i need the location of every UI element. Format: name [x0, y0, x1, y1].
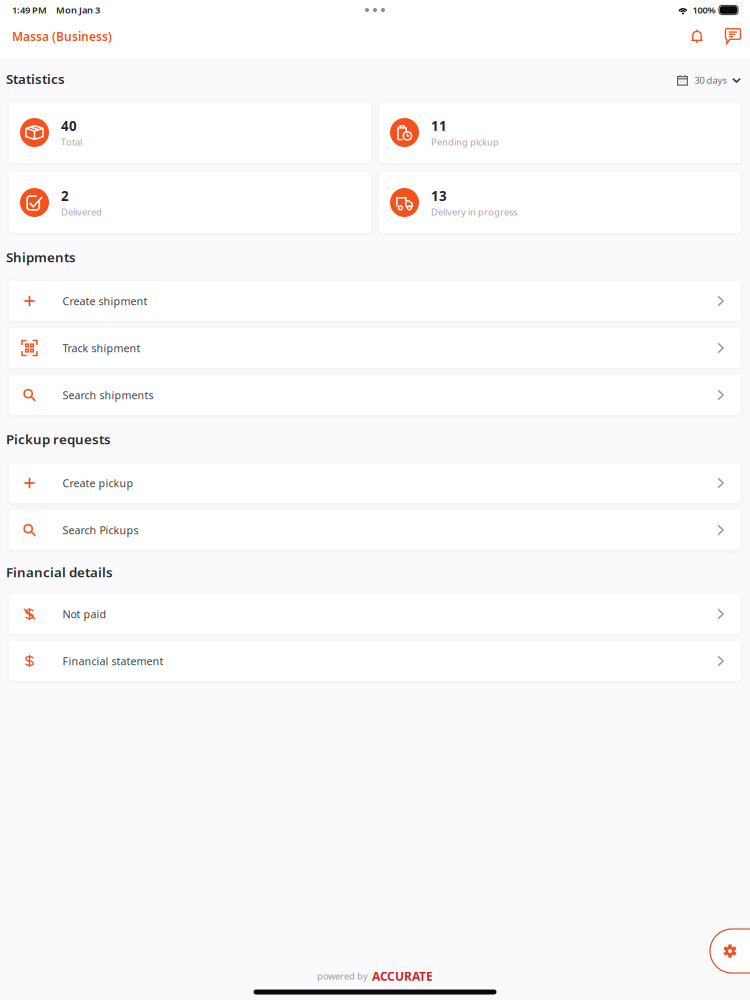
button[interactable]: 13: [379, 172, 741, 233]
staticText: 13: [431, 187, 447, 205]
staticText: Not paid: [62, 607, 106, 621]
staticText: Total: [61, 136, 82, 148]
staticText: 11: [431, 117, 447, 135]
staticText: Shipments: [6, 248, 76, 266]
button[interactable]: Notifications: [682, 21, 712, 51]
button[interactable]: 2: [9, 172, 371, 233]
button[interactable]: 11: [379, 102, 741, 163]
button[interactable]: Search shipments: [9, 375, 741, 415]
staticText: Delivered: [61, 206, 102, 218]
staticText: 30 days: [694, 74, 726, 86]
button[interactable]: 40: [9, 102, 371, 163]
staticText: powered by: [317, 970, 368, 982]
button[interactable]: Settings: [710, 929, 750, 973]
staticText: Financial statement: [62, 654, 163, 668]
button[interactable]: 30 days: [669, 66, 750, 94]
button[interactable]: Messages: [718, 21, 748, 51]
staticText: 100%: [692, 4, 715, 16]
button[interactable]: Create pickup: [9, 463, 741, 503]
staticText: Mon Jan 3: [56, 4, 100, 16]
staticText: Massa (Business): [12, 28, 112, 44]
staticText: Create shipment: [62, 294, 147, 308]
staticText: Delivery in progress: [431, 206, 517, 218]
staticText: Pickup requests: [6, 430, 111, 448]
staticText: Pending pickup: [431, 136, 499, 148]
staticText: Financial details: [6, 563, 113, 581]
staticText: 2: [61, 187, 69, 205]
button[interactable]: Financial statement: [9, 641, 741, 681]
staticText: Track shipment: [62, 341, 140, 355]
button[interactable]: Search Pickups: [9, 510, 741, 550]
staticText: Search Pickups: [62, 523, 138, 537]
staticText: Create pickup: [62, 476, 133, 490]
staticText: 40: [61, 117, 77, 135]
button[interactable]: Create shipment: [9, 281, 741, 321]
staticText: Statistics: [6, 70, 65, 88]
staticText: Search shipments: [62, 388, 153, 402]
staticText: ACCURATE: [372, 968, 433, 984]
button[interactable]: Not paid: [9, 594, 741, 634]
staticText: 1:49 PM: [12, 4, 47, 16]
button[interactable]: Track shipment: [9, 328, 741, 368]
